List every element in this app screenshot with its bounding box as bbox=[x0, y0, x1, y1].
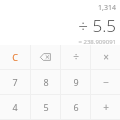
staticText: 1,314 bbox=[98, 3, 116, 13]
button[interactable]: Minus bbox=[91, 70, 120, 94]
staticText: + bbox=[103, 100, 109, 114]
staticText: ÷ bbox=[73, 50, 79, 64]
button[interactable]: 8 bbox=[31, 70, 60, 94]
button[interactable]: Multiply bbox=[91, 45, 120, 69]
staticText: 8 bbox=[43, 76, 49, 88]
button[interactable]: 5 bbox=[31, 95, 60, 119]
staticText: C bbox=[12, 51, 18, 63]
staticText: 4 bbox=[12, 101, 18, 113]
staticText: − bbox=[103, 75, 109, 89]
staticText: × bbox=[103, 50, 109, 64]
button[interactable]: Divide bbox=[61, 45, 90, 69]
staticText: 7 bbox=[12, 76, 18, 88]
staticText: 5 bbox=[43, 101, 49, 113]
button[interactable]: Plus bbox=[91, 95, 120, 119]
button[interactable]: 6 bbox=[61, 95, 90, 119]
button[interactable]: C bbox=[0, 45, 30, 69]
staticText: 6 bbox=[73, 101, 79, 113]
staticText: ÷ 5.5 bbox=[78, 14, 116, 37]
button[interactable]: Backspace bbox=[31, 45, 60, 69]
staticText: 9 bbox=[73, 76, 79, 88]
button[interactable]: 7 bbox=[0, 70, 30, 94]
button[interactable]: 9 bbox=[61, 70, 90, 94]
staticText: = 238.909091 bbox=[78, 38, 116, 45]
button[interactable]: 4 bbox=[0, 95, 30, 119]
